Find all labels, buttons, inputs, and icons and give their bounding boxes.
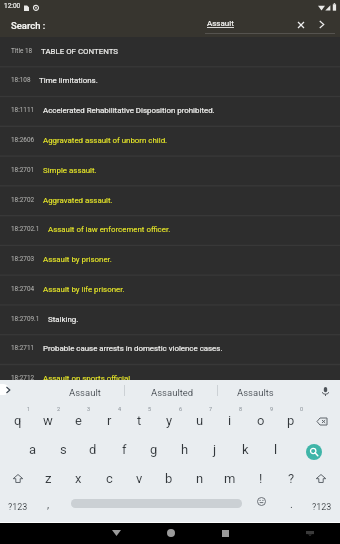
staticText: Assault on sports official. bbox=[43, 374, 133, 383]
button[interactable]: 18:2709.1 bbox=[0, 304, 340, 334]
button[interactable]: 18:2703 bbox=[0, 244, 340, 274]
button[interactable]: b bbox=[154, 464, 184, 493]
staticText: e bbox=[75, 413, 82, 428]
staticText: Assault bbox=[69, 387, 101, 398]
button[interactable]: ! bbox=[246, 464, 276, 493]
staticText: ?123 bbox=[8, 502, 28, 513]
staticText: Title 18 bbox=[11, 47, 33, 55]
button[interactable]: l bbox=[261, 435, 291, 464]
button[interactable]: j bbox=[200, 435, 230, 464]
staticText: d bbox=[89, 442, 97, 457]
button[interactable]: k bbox=[230, 435, 260, 464]
button[interactable]: 18:2704 bbox=[0, 274, 340, 304]
button[interactable]: g bbox=[139, 435, 169, 464]
staticText: Aggravated assault of unborn child. bbox=[43, 136, 168, 145]
button[interactable]: t bbox=[124, 406, 154, 435]
staticText: Probable cause arrests in domestic viole… bbox=[43, 344, 223, 353]
button[interactable]: Back bbox=[92, 523, 140, 543]
button[interactable]: 18:1111 bbox=[0, 95, 340, 125]
staticText: 18:2702 bbox=[11, 196, 35, 204]
button[interactable]: Search bbox=[306, 444, 322, 460]
staticText: 18:2712 bbox=[11, 374, 35, 382]
button[interactable]: 18:108 bbox=[0, 65, 340, 95]
staticText: t bbox=[137, 413, 142, 428]
button[interactable]: Comma bbox=[33, 490, 63, 519]
staticText: Assault by life prisoner. bbox=[43, 285, 125, 294]
staticText: Assault bbox=[207, 19, 234, 28]
staticText: Assaults bbox=[237, 387, 274, 398]
button[interactable]: m bbox=[215, 464, 245, 493]
button[interactable]: 18:2701 bbox=[0, 155, 340, 185]
staticText: 18:2702.1 bbox=[11, 225, 40, 233]
staticText: a bbox=[29, 442, 37, 457]
button[interactable]: Shift bbox=[3, 464, 33, 493]
button[interactable]: c bbox=[94, 464, 124, 493]
button[interactable]: Recent apps bbox=[201, 523, 249, 543]
staticText: g bbox=[150, 442, 158, 457]
button[interactable]: 18:2711 bbox=[0, 333, 340, 363]
button[interactable]: Title 18 bbox=[0, 36, 340, 66]
staticText: k bbox=[242, 442, 249, 457]
button[interactable]: x bbox=[63, 464, 93, 493]
button[interactable]: a bbox=[18, 435, 48, 464]
button[interactable]: Space bbox=[66, 488, 246, 514]
staticText: m bbox=[224, 471, 236, 486]
button[interactable]: Backspace bbox=[307, 407, 337, 435]
button[interactable]: Assault bbox=[47, 382, 123, 403]
button[interactable]: ?123 bbox=[307, 493, 337, 522]
staticText: j bbox=[213, 442, 217, 457]
staticText: ? bbox=[288, 471, 295, 486]
button[interactable]: 18:2712 bbox=[0, 363, 340, 393]
button[interactable]: Expand suggestions bbox=[0, 380, 16, 400]
staticText: 18:2709.1 bbox=[11, 315, 40, 323]
staticText: f bbox=[122, 442, 127, 457]
staticText: 18:108 bbox=[11, 76, 31, 84]
button[interactable]: Emoji bbox=[246, 488, 276, 514]
button[interactable]: u bbox=[185, 406, 215, 435]
button[interactable]: 18:2702.1 bbox=[0, 214, 340, 244]
staticText: 18:1111 bbox=[11, 106, 35, 114]
staticText: Assaulted bbox=[151, 387, 194, 398]
button[interactable]: z bbox=[33, 464, 63, 493]
staticText: v bbox=[136, 471, 143, 486]
staticText: y bbox=[166, 413, 173, 428]
button[interactable]: d bbox=[78, 435, 108, 464]
staticText: 8 bbox=[239, 406, 243, 412]
button[interactable]: y bbox=[154, 406, 184, 435]
staticText: Simple assault. bbox=[43, 166, 97, 175]
button[interactable]: r bbox=[94, 406, 124, 435]
button[interactable]: Clear search bbox=[291, 15, 310, 34]
button[interactable]: f bbox=[109, 435, 139, 464]
button[interactable]: Next result bbox=[312, 15, 331, 34]
button[interactable]: ?123 bbox=[3, 493, 33, 522]
button[interactable]: n bbox=[185, 464, 215, 493]
button[interactable]: h bbox=[170, 435, 200, 464]
button[interactable]: Hide keyboard bbox=[292, 523, 328, 543]
button[interactable]: s bbox=[48, 435, 78, 464]
staticText: u bbox=[196, 413, 204, 428]
button[interactable]: Home bbox=[147, 523, 195, 543]
staticText: l bbox=[274, 442, 278, 457]
staticText: z bbox=[45, 471, 52, 486]
button[interactable]: o bbox=[246, 406, 276, 435]
button[interactable]: 18:2702 bbox=[0, 185, 340, 215]
staticText: 1 bbox=[27, 406, 31, 412]
button[interactable]: 18:2606 bbox=[0, 125, 340, 155]
button[interactable]: Period bbox=[276, 490, 306, 519]
staticText: 2 bbox=[57, 406, 61, 412]
button[interactable]: Voice input bbox=[314, 381, 337, 402]
button[interactable]: Assaults bbox=[217, 382, 293, 403]
button[interactable]: v bbox=[124, 464, 154, 493]
button[interactable]: e bbox=[63, 406, 93, 435]
button[interactable]: p bbox=[276, 406, 306, 435]
staticText: c bbox=[106, 471, 113, 486]
staticText: h bbox=[181, 442, 189, 457]
button[interactable]: ? bbox=[276, 464, 306, 493]
button[interactable]: Assaulted bbox=[134, 382, 210, 403]
button[interactable]: Shift bbox=[306, 464, 336, 493]
staticText: q bbox=[14, 413, 22, 428]
staticText: 18:2703 bbox=[11, 255, 35, 263]
button[interactable]: i bbox=[215, 406, 245, 435]
button[interactable]: w bbox=[33, 406, 63, 435]
button[interactable]: q bbox=[3, 406, 33, 435]
